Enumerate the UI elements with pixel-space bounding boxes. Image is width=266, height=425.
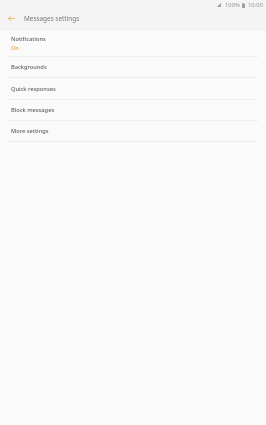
button[interactable]: Block messages bbox=[0, 100, 266, 121]
staticText: Notifications bbox=[11, 35, 46, 43]
staticText: On bbox=[11, 44, 19, 52]
button[interactable]: More settings bbox=[0, 121, 266, 142]
staticText: Messages settings bbox=[24, 14, 80, 23]
staticText: Block messages bbox=[11, 106, 55, 114]
button[interactable]: Notifications bbox=[0, 30, 266, 57]
staticText: 10:00 bbox=[248, 1, 264, 9]
staticText: Backgrounds bbox=[11, 63, 47, 71]
button[interactable]: Backgrounds bbox=[0, 57, 266, 78]
button[interactable]: Quick responses bbox=[0, 78, 266, 100]
staticText: More settings bbox=[11, 127, 49, 135]
button[interactable]: Navigate up bbox=[2, 9, 21, 28]
staticText: 100% bbox=[225, 1, 241, 9]
staticText: Quick responses bbox=[11, 85, 56, 93]
